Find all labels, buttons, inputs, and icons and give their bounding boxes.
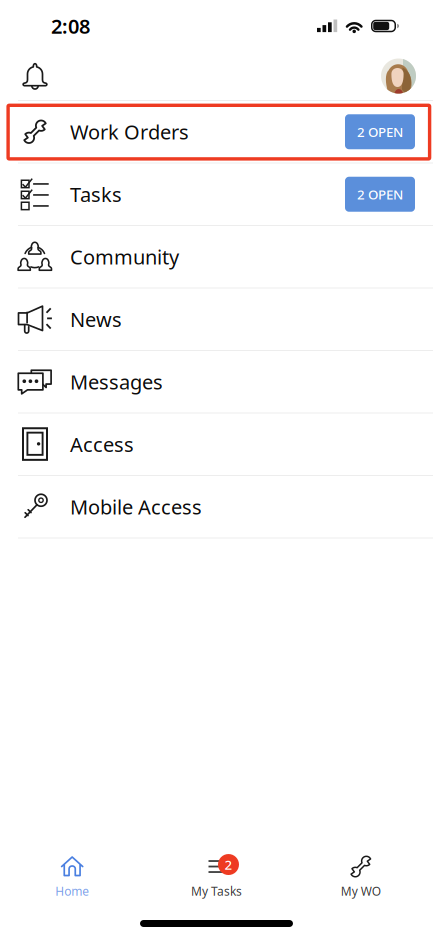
button[interactable]: Access	[0, 413, 433, 475]
staticText: Messages	[70, 368, 163, 395]
button[interactable]: News	[0, 288, 433, 350]
staticText: Home	[55, 883, 89, 899]
button[interactable]: Messages	[0, 351, 433, 412]
button[interactable]: Tasks	[0, 163, 433, 225]
button[interactable]: Mobile Access	[0, 476, 433, 537]
button[interactable]: My WO	[289, 855, 433, 899]
staticText: Work Orders	[70, 118, 189, 145]
staticText: 2 OPEN	[357, 123, 403, 141]
button[interactable]: Work Orders	[0, 101, 433, 162]
button[interactable]: Home	[0, 855, 144, 899]
staticText: Tasks	[70, 181, 122, 208]
staticText: 2:08	[51, 13, 90, 39]
staticText: News	[70, 306, 122, 333]
button[interactable]: Community	[0, 226, 433, 287]
button[interactable]: 2	[144, 855, 289, 899]
staticText: My Tasks	[191, 883, 242, 899]
button[interactable]: Notifications	[18, 59, 52, 93]
staticText: Access	[70, 431, 134, 458]
staticText: 2	[224, 856, 232, 873]
staticText: Mobile Access	[70, 493, 202, 520]
staticText: My WO	[341, 883, 381, 899]
staticText: Community	[70, 243, 179, 270]
button[interactable]: Profile	[381, 58, 416, 93]
staticText: 2 OPEN	[357, 185, 403, 203]
